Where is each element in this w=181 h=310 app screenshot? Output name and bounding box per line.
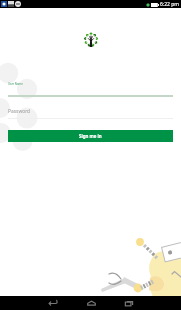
staticText: User Name [8,82,23,86]
button[interactable]: Home [80,296,102,310]
staticText: Password [8,108,31,115]
button[interactable]: Recents [118,296,140,310]
button[interactable]: Sign me in [8,130,173,142]
staticText: 6:22 pm [160,1,179,8]
button[interactable]: User Name [8,82,173,97]
button[interactable]: Password [8,106,173,119]
staticText: Sign me in [79,133,102,139]
button[interactable]: Back [42,296,64,310]
